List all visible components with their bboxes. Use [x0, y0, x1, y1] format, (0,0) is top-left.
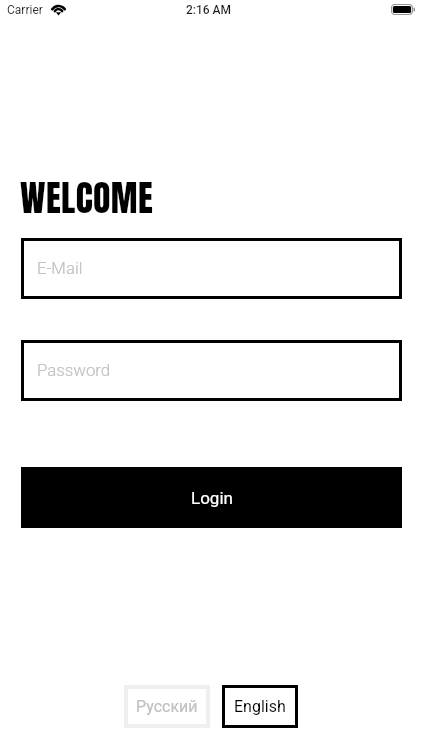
staticText: WELCOME — [20, 171, 154, 225]
staticText: Carrier — [7, 3, 43, 17]
staticText: Русский — [136, 697, 198, 716]
staticText: 2:16 AM — [186, 3, 232, 17]
button[interactable]: Русский — [124, 685, 210, 728]
button[interactable]: English — [222, 685, 298, 728]
staticText: E-Mail — [37, 258, 83, 278]
button[interactable]: Password — [21, 340, 402, 401]
staticText: Login — [191, 488, 233, 508]
button[interactable]: E-Mail — [21, 238, 402, 299]
staticText: Password — [37, 360, 111, 380]
staticText: English — [234, 697, 286, 716]
button[interactable]: Login — [21, 467, 402, 528]
